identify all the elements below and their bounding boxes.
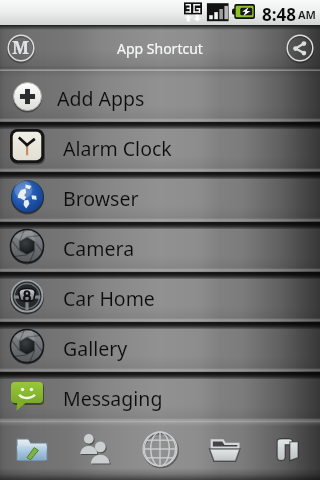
button[interactable]: Alarm Clock (0, 121, 320, 171)
staticText: Alarm Clock (63, 135, 172, 162)
button[interactable]: Menu (0, 26, 41, 70)
staticText: AM (298, 7, 316, 22)
staticText: Add Apps (57, 85, 145, 112)
staticText: Messaging (63, 385, 163, 412)
staticText: 8:48 (262, 3, 296, 26)
button[interactable]: Contacts (64, 421, 128, 480)
staticText: Car Home (63, 285, 155, 312)
staticText: Browser (63, 185, 139, 212)
staticText: Gallery (63, 335, 128, 362)
button[interactable]: Camera (0, 221, 320, 271)
button[interactable]: Car Home (0, 271, 320, 321)
button[interactable]: Browser (0, 171, 320, 221)
button[interactable]: Apps (0, 421, 64, 480)
button[interactable]: Files (192, 421, 256, 480)
button[interactable]: Browser (128, 421, 192, 480)
staticText: Camera (63, 235, 135, 262)
button[interactable]: More (256, 421, 320, 480)
button[interactable]: Messaging (0, 371, 320, 421)
button[interactable]: Share (280, 26, 320, 70)
button[interactable]: Gallery (0, 321, 320, 371)
staticText: M (12, 35, 30, 60)
staticText: App Shortcut (117, 39, 203, 58)
button[interactable]: Add Apps (0, 71, 320, 121)
